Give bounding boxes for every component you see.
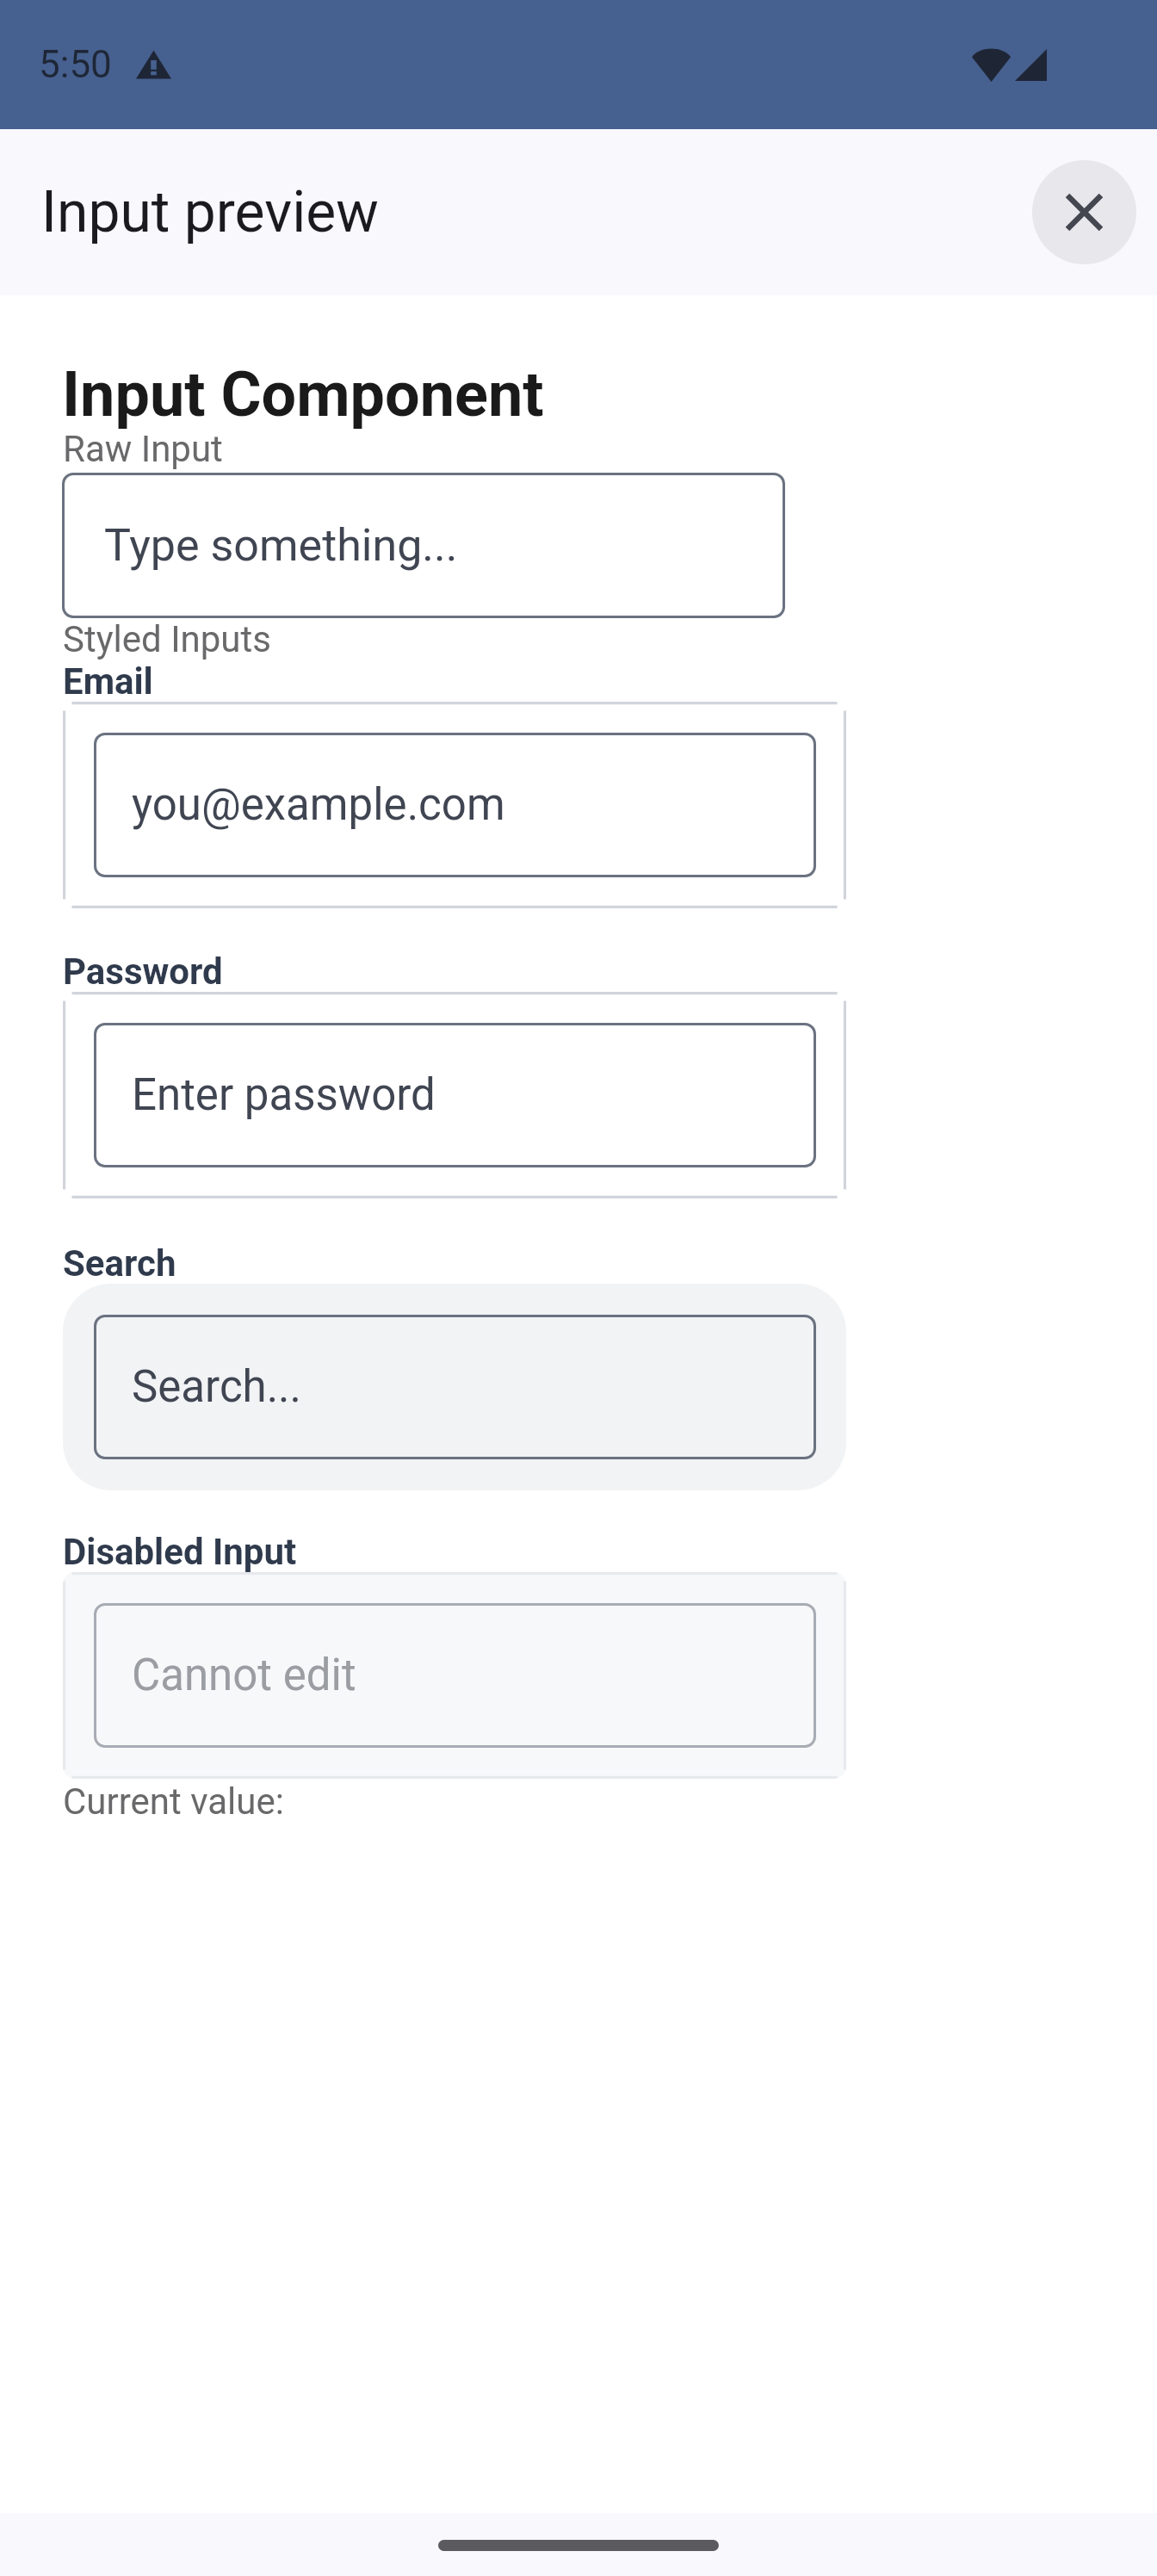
staticText: Enter password [132,1069,436,1121]
staticText: Raw Input [63,428,223,470]
staticText: Password [63,951,223,993]
button[interactable]: you@example.com [94,733,816,877]
staticText: 5:50 [39,42,112,87]
staticText: Input Component [62,358,1157,430]
button[interactable]: Type something... [62,473,785,618]
button[interactable]: Close [1032,160,1136,264]
staticText: Current value: [63,1780,284,1823]
staticText: Email [63,660,153,703]
button[interactable]: Enter password [94,1023,816,1167]
staticText: Input preview [41,179,379,245]
staticText: Cannot edit [132,1650,356,1701]
staticText: Search [63,1242,176,1285]
staticText: Disabled Input [63,1531,297,1573]
staticText: Styled Inputs [63,618,271,660]
button[interactable]: Cannot edit [94,1603,816,1748]
staticText: you@example.com [132,779,505,831]
staticText: Search... [132,1361,302,1413]
staticText: Type something... [104,519,458,572]
button[interactable]: Search... [94,1315,816,1459]
